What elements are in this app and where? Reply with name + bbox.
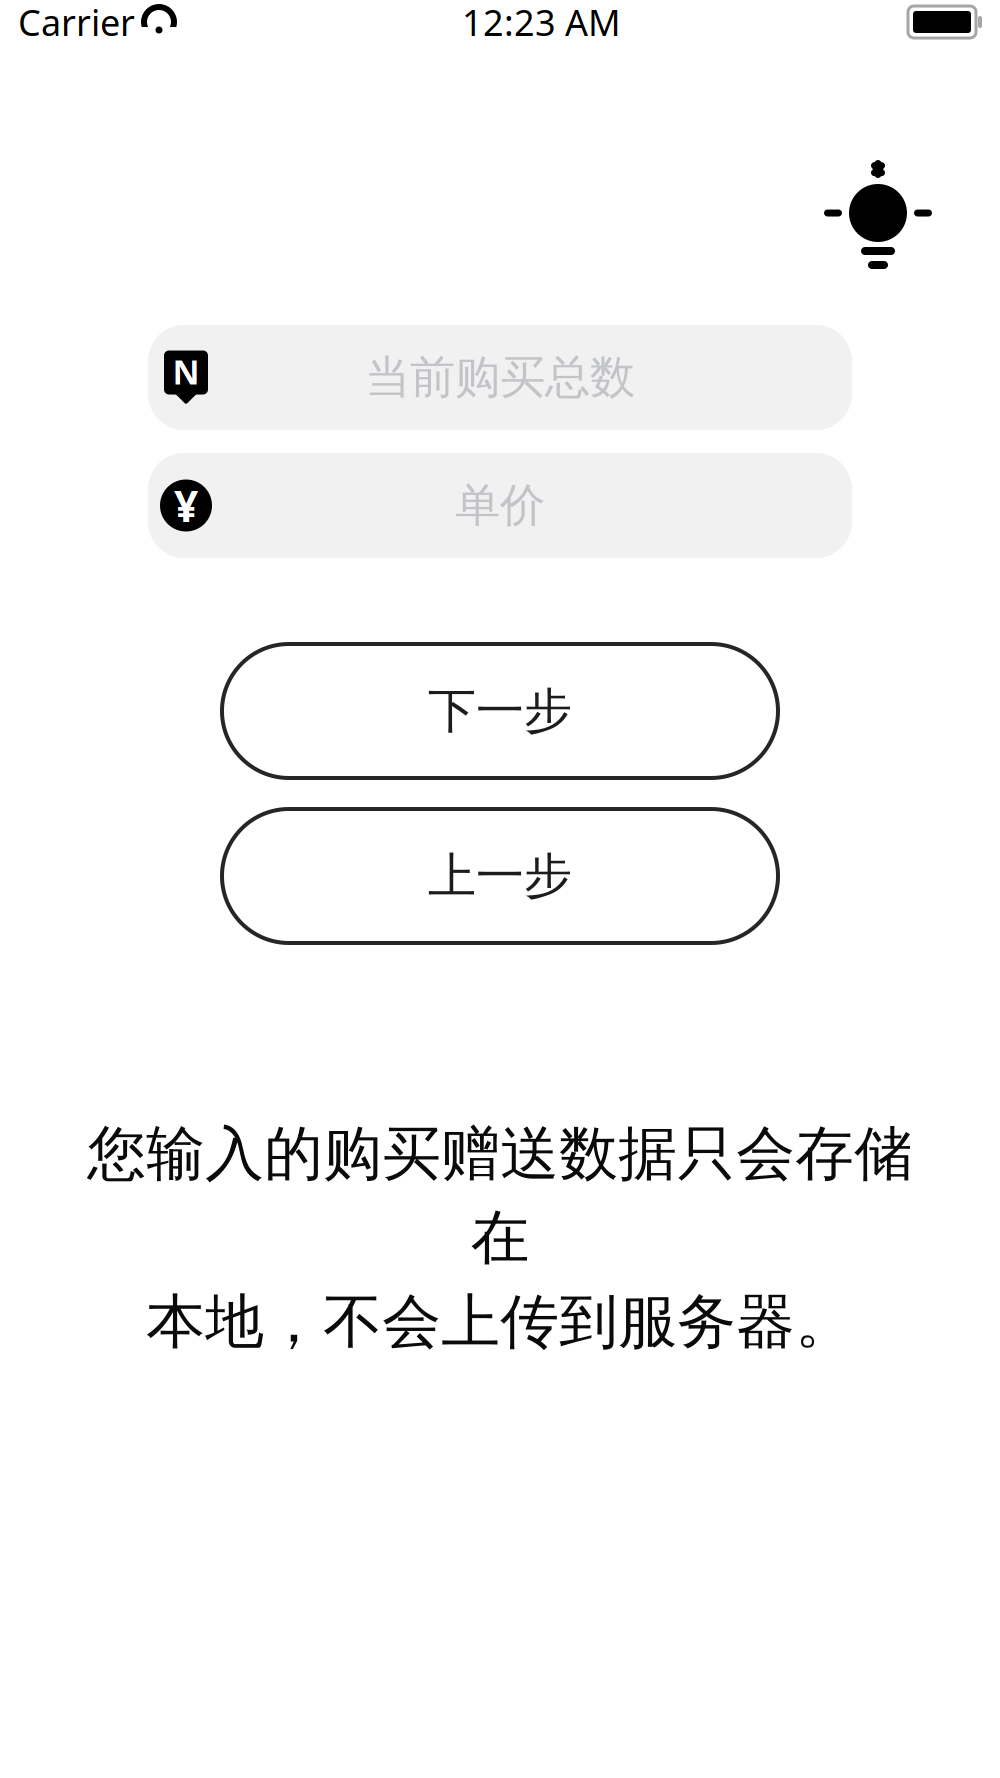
staticText: 单价 xyxy=(455,478,545,533)
staticText: Carrier xyxy=(18,0,135,46)
staticText: 您输入的购买赠送数据只会存储在 本地，不会上传到服务器。 xyxy=(87,1118,913,1358)
staticText: N xyxy=(172,349,199,394)
staticText: ¥ xyxy=(174,477,198,534)
staticText: 当前购买总数 xyxy=(365,350,635,405)
button[interactable]: 下一步 xyxy=(222,644,778,778)
staticText: 上一步 xyxy=(428,846,572,905)
button[interactable]: 提示 xyxy=(826,161,930,265)
staticText: 12:23 AM xyxy=(462,0,621,46)
button[interactable]: 上一步 xyxy=(222,809,778,943)
staticText: 下一步 xyxy=(428,681,572,740)
